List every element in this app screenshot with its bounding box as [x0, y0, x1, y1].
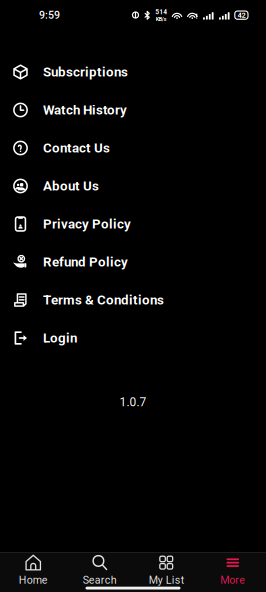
staticText: More	[220, 574, 245, 586]
staticText: KB/s	[156, 16, 167, 22]
staticText: 1.0.7	[119, 395, 146, 409]
staticText: Contact Us	[43, 140, 110, 156]
staticText: Login	[43, 330, 77, 346]
button[interactable]: About Us	[0, 167, 266, 205]
button[interactable]: Terms & Conditions	[0, 281, 266, 319]
button[interactable]: Login	[0, 319, 266, 357]
staticText: Privacy Policy	[43, 216, 131, 232]
staticText: 9:59	[39, 9, 60, 21]
button[interactable]: Search	[66, 548, 133, 588]
staticText: Subscriptions	[43, 64, 128, 80]
staticText: Search	[83, 574, 117, 586]
button[interactable]: Contact Us	[0, 129, 266, 167]
button[interactable]: Privacy Policy	[0, 205, 266, 243]
staticText: About Us	[43, 178, 99, 194]
button[interactable]: More	[199, 548, 266, 588]
button[interactable]: My List	[133, 548, 199, 588]
button[interactable]: Subscriptions	[0, 53, 266, 91]
button[interactable]: Watch History	[0, 91, 266, 129]
staticText: My List	[149, 574, 184, 586]
staticText: Home	[19, 574, 48, 586]
staticText: Watch History	[43, 102, 127, 118]
button[interactable]: Home	[0, 548, 66, 588]
staticText: Terms & Conditions	[43, 292, 164, 308]
staticText: Refund Policy	[43, 254, 128, 270]
staticText: 514	[155, 8, 167, 16]
button[interactable]: Refund Policy	[0, 243, 266, 281]
staticText: 42	[237, 11, 245, 19]
